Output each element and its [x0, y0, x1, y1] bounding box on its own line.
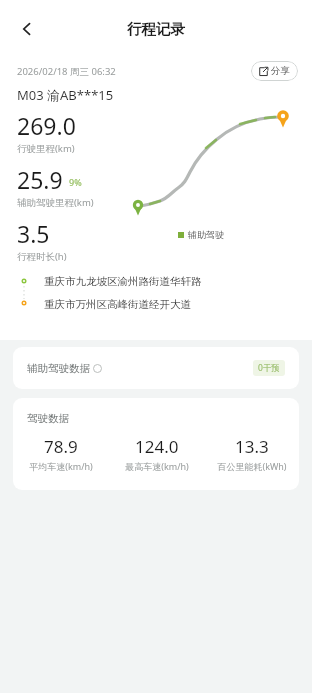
staticText: 百公里能耗(kWh)	[217, 460, 287, 472]
staticText: 78.9	[44, 435, 78, 458]
staticText: 0干预	[258, 362, 280, 374]
button[interactable]: 辅助驾驶数据	[13, 347, 299, 389]
staticText: 3.5	[17, 218, 50, 249]
staticText: 驾驶数据	[27, 412, 69, 425]
staticText: 最高车速(km/h)	[125, 460, 189, 472]
staticText: 辅助驾驶数据	[27, 362, 90, 375]
staticText: 分享	[271, 65, 290, 77]
staticText: 269.0	[17, 110, 76, 141]
staticText: 124.0	[135, 435, 179, 458]
staticText: 辅助驾驶里程(km)	[17, 196, 94, 209]
button[interactable]: 驾驶数据	[13, 398, 299, 490]
staticText: 13.3	[235, 435, 269, 458]
staticText: M03 渝AB***15	[17, 86, 114, 104]
staticText: 行驶里程(km)	[17, 142, 75, 155]
staticText: 9%	[69, 176, 82, 188]
staticText: 辅助驾驶	[188, 229, 224, 240]
staticText: 行程时长(h)	[17, 250, 67, 263]
staticText: 2026/02/18 周三 06:32	[17, 65, 116, 78]
button[interactable]: Back	[10, 12, 44, 46]
staticText: 重庆市万州区高峰街道经开大道	[44, 298, 191, 311]
staticText: 25.9	[17, 164, 63, 195]
staticText: 行程记录	[127, 20, 185, 38]
staticText: 平均车速(km/h)	[29, 460, 93, 472]
button[interactable]: 分享	[251, 61, 298, 81]
staticText: 重庆市九龙坡区渝州路街道华轩路	[44, 275, 202, 288]
